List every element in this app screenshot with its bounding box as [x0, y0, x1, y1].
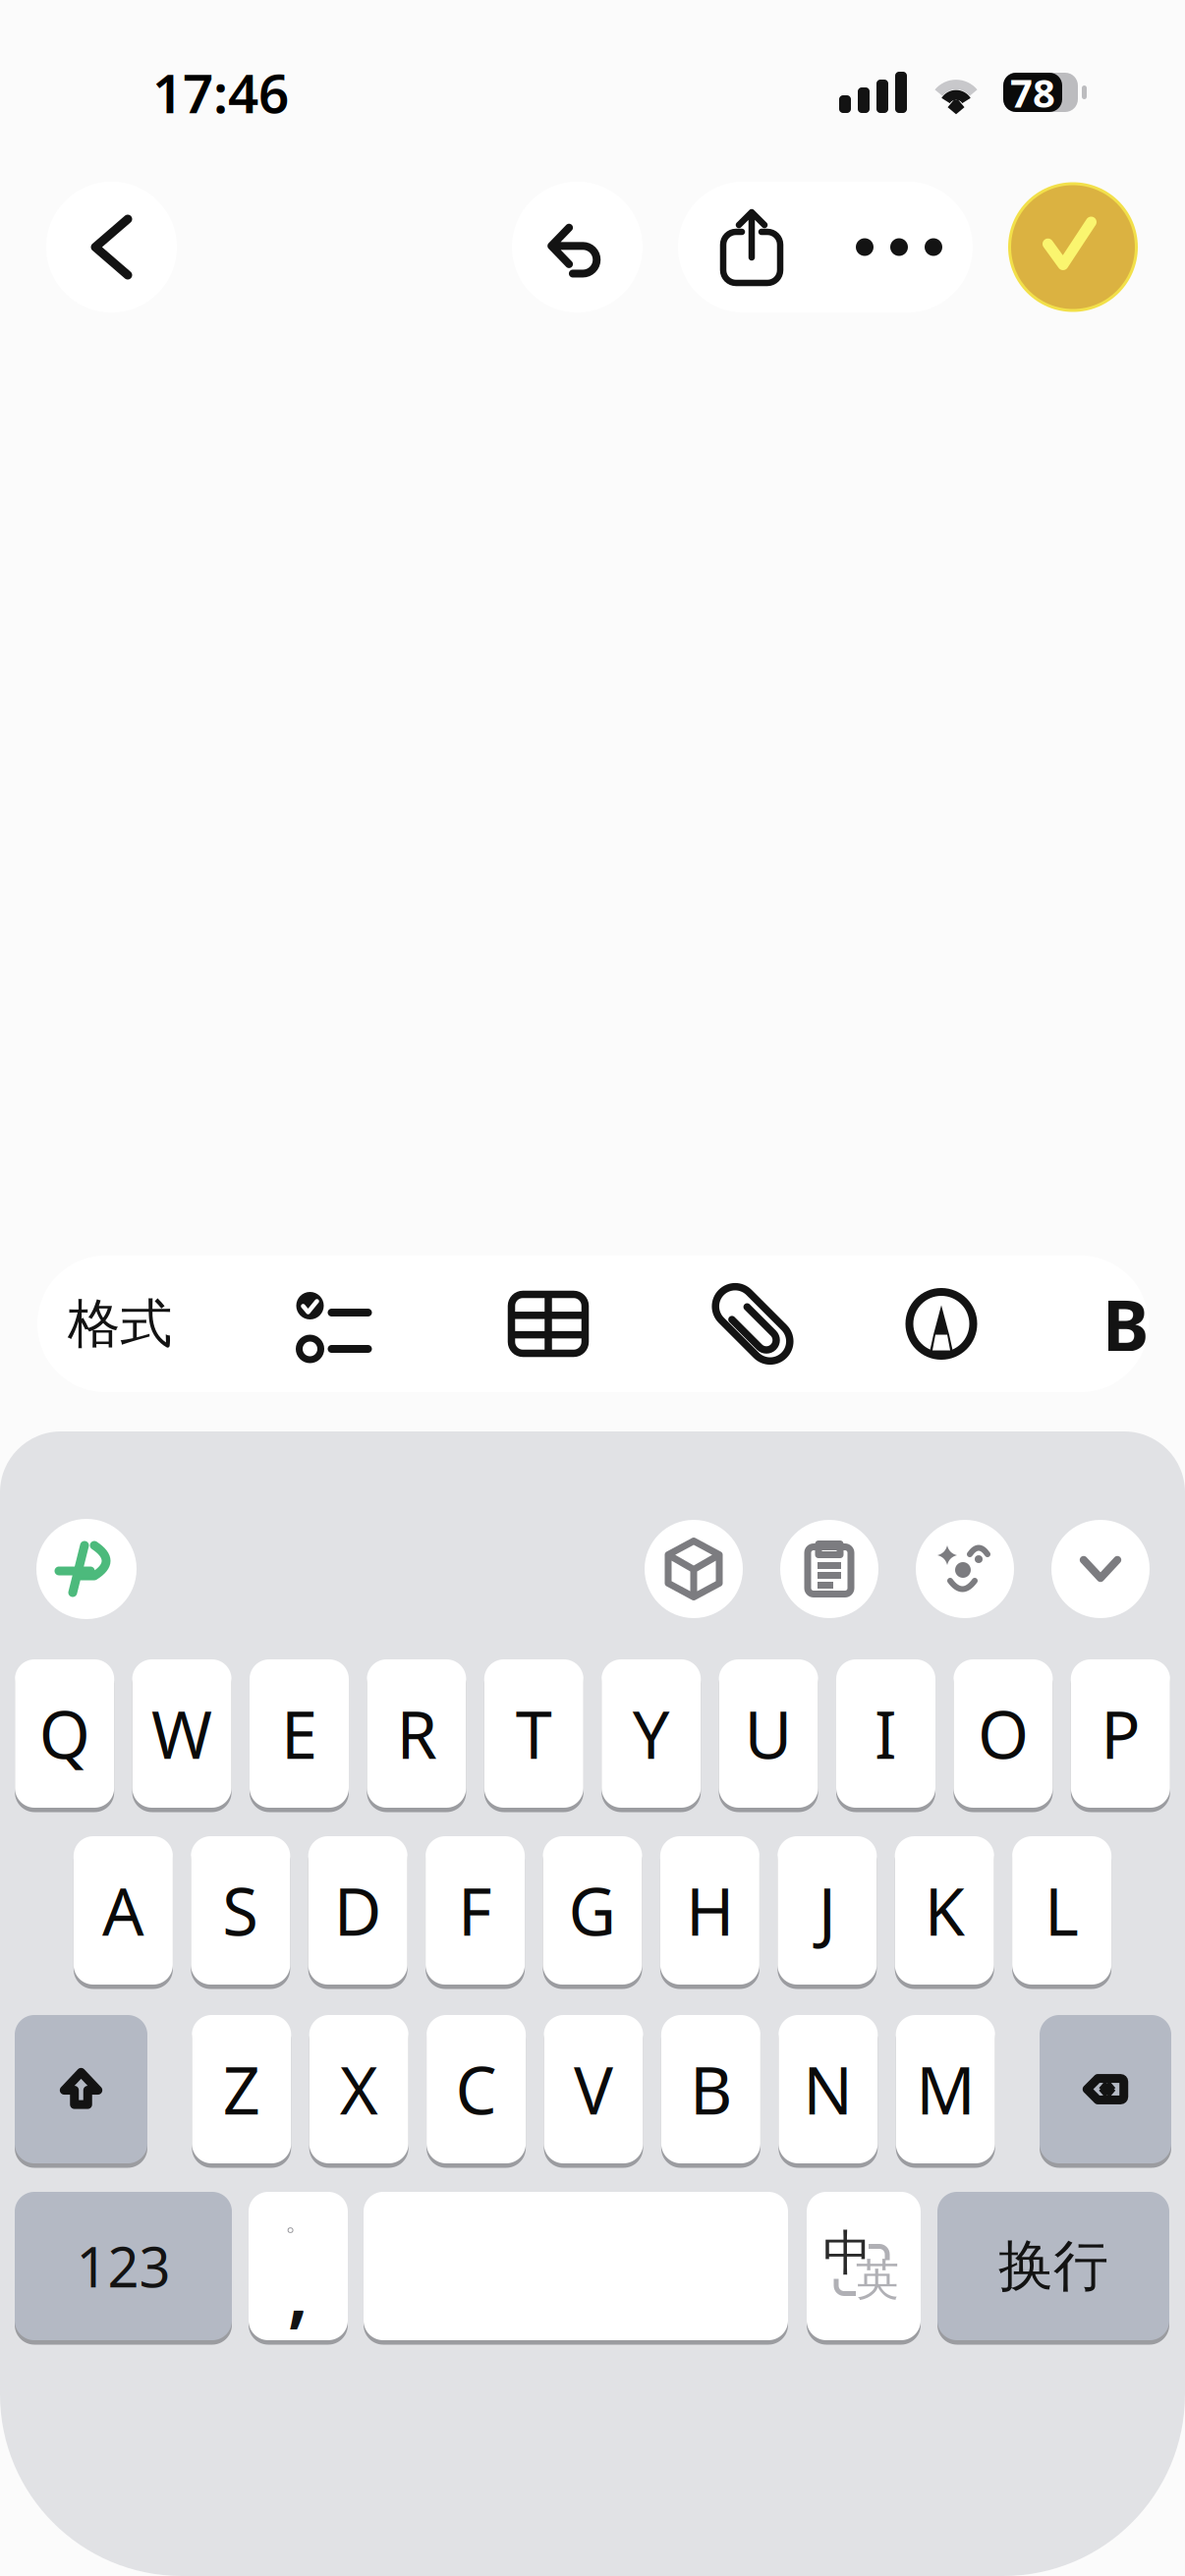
button[interactable]: Done	[1008, 182, 1138, 312]
button[interactable]: U	[719, 1659, 818, 1808]
button[interactable]: Clipboard	[780, 1520, 878, 1618]
button[interactable]: R	[367, 1659, 466, 1808]
button[interactable]: D	[308, 1836, 407, 1985]
button[interactable]: O	[954, 1659, 1053, 1808]
button[interactable]: 。	[249, 2192, 348, 2340]
staticText: 123	[76, 2229, 170, 2303]
staticText: R	[396, 1690, 437, 1777]
staticText: J	[818, 1867, 836, 1954]
staticText: G	[568, 1867, 617, 1954]
button[interactable]: B	[661, 2015, 760, 2163]
staticText: 78	[1010, 66, 1055, 118]
staticText: 17:46	[152, 57, 289, 128]
button[interactable]: C	[427, 2015, 526, 2163]
button[interactable]: 换行	[937, 2192, 1169, 2340]
staticText: Q	[39, 1690, 90, 1777]
staticText: A	[102, 1867, 144, 1954]
button[interactable]: N	[779, 2015, 878, 2163]
staticText: M	[916, 2046, 975, 2133]
button[interactable]: 123	[15, 2192, 232, 2340]
button[interactable]: L	[1012, 1836, 1111, 1985]
staticText: Z	[223, 2046, 260, 2133]
staticText: H	[686, 1867, 734, 1954]
staticText: K	[924, 1867, 965, 1954]
button[interactable]: X	[309, 2015, 408, 2163]
button[interactable]: A	[74, 1836, 173, 1985]
button[interactable]: W	[132, 1659, 231, 1808]
button[interactable]: Emoji	[916, 1520, 1014, 1618]
staticText: V	[574, 2046, 613, 2133]
staticText: 换行	[998, 2232, 1108, 2300]
button[interactable]: Checklist	[202, 1256, 462, 1392]
button[interactable]: More	[825, 182, 973, 312]
button[interactable]: Z	[192, 2015, 291, 2163]
staticText: L	[1045, 1867, 1079, 1954]
button[interactable]: M	[896, 2015, 995, 2163]
button[interactable]: Y	[602, 1659, 701, 1808]
button[interactable]: Undo	[512, 182, 643, 312]
button[interactable]: H	[660, 1836, 759, 1985]
button[interactable]: Q	[15, 1659, 114, 1808]
button[interactable]: I	[836, 1659, 935, 1808]
staticText: T	[516, 1690, 552, 1777]
staticText: P	[1101, 1690, 1140, 1777]
staticText: F	[458, 1867, 492, 1954]
button[interactable]: G	[543, 1836, 642, 1985]
button[interactable]: V	[544, 2015, 643, 2163]
staticText: I	[875, 1690, 897, 1777]
staticText: 。	[285, 2205, 311, 2238]
button[interactable]: J	[778, 1836, 877, 1985]
button[interactable]: K	[895, 1836, 994, 1985]
staticText: B	[690, 2046, 732, 2133]
button[interactable]: Stickers	[645, 1520, 743, 1618]
button[interactable]: T	[484, 1659, 583, 1808]
staticText: ,	[287, 2240, 309, 2340]
button[interactable]: Shift	[15, 2015, 147, 2163]
button[interactable]: S	[191, 1836, 290, 1985]
button[interactable]: Attach	[635, 1256, 871, 1392]
staticText: O	[978, 1690, 1029, 1777]
staticText: D	[334, 1867, 382, 1954]
button[interactable]: Markup	[871, 1256, 1012, 1392]
staticText: U	[744, 1690, 793, 1777]
button[interactable]: Chinese English toggle	[807, 2192, 921, 2340]
staticText: W	[151, 1690, 212, 1777]
staticText: 格式	[68, 1292, 172, 1356]
button[interactable]: 格式	[37, 1256, 202, 1392]
staticText: Y	[632, 1690, 670, 1777]
button[interactable]: Back	[46, 182, 177, 312]
button[interactable]: Space	[364, 2192, 788, 2340]
button[interactable]: Bold	[1012, 1256, 1149, 1392]
button[interactable]: Table	[462, 1256, 635, 1392]
staticText: 英	[856, 2253, 899, 2306]
staticText: B	[1102, 1277, 1149, 1371]
button[interactable]: Keyboard app	[36, 1519, 137, 1619]
button[interactable]: E	[250, 1659, 349, 1808]
staticText: C	[456, 2046, 497, 2133]
button[interactable]: Share	[678, 182, 825, 312]
staticText: N	[803, 2046, 853, 2133]
staticText: X	[340, 2046, 378, 2133]
staticText: 中	[823, 2223, 871, 2283]
button[interactable]: Hide keyboard	[1051, 1520, 1150, 1618]
staticText: E	[281, 1690, 317, 1777]
button[interactable]: Delete	[1040, 2015, 1171, 2163]
staticText: S	[222, 1867, 259, 1954]
button[interactable]: F	[426, 1836, 525, 1985]
button[interactable]: P	[1071, 1659, 1170, 1808]
